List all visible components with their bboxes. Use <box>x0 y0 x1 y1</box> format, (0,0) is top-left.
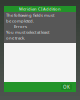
staticText: OK <box>63 84 70 90</box>
staticText: Errors <box>14 24 27 29</box>
staticText: The following fields must be completed. <box>6 12 54 24</box>
staticText: Meridian CI Addition <box>19 6 61 12</box>
button[interactable]: OK <box>61 84 72 90</box>
button[interactable]: Meridian CI Addition <box>4 6 76 12</box>
staticText: You must select at least one track. <box>6 29 49 41</box>
